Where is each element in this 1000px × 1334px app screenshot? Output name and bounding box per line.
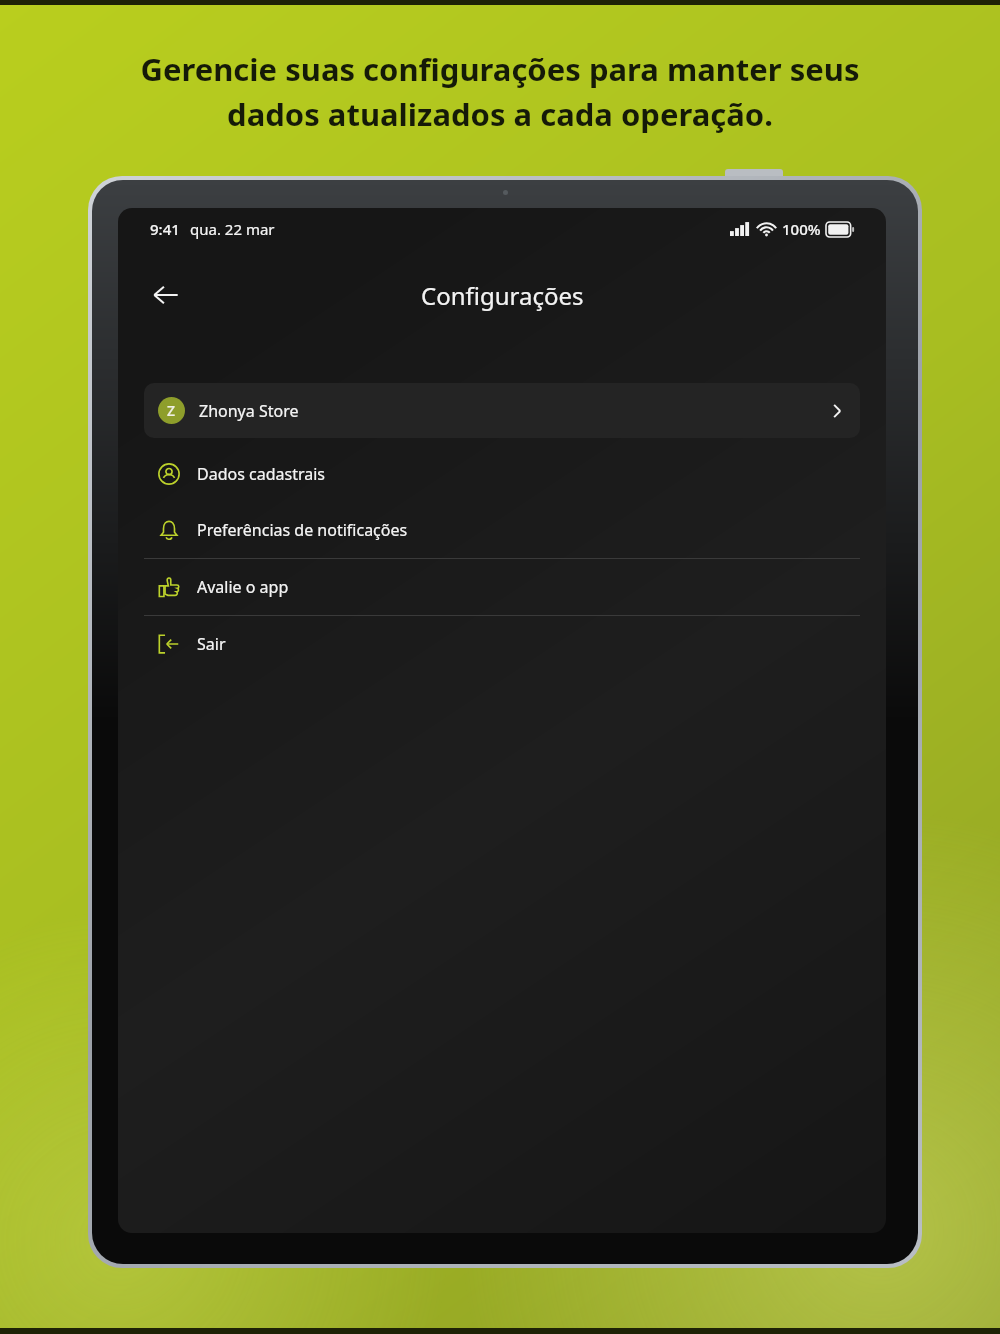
button[interactable]: Sair [144,616,860,672]
button[interactable]: Preferências de notificações [144,502,860,558]
button[interactable]: Avalie o app [144,559,860,615]
staticText: Z [167,401,176,420]
staticText: 100% [782,219,821,239]
staticText: Configurações [421,279,584,312]
button[interactable]: Z [144,383,860,438]
staticText: Avalie o app [197,576,289,598]
button[interactable]: Voltar [140,269,192,321]
staticText: Preferências de notificações [197,519,408,541]
staticText: Zhonya Store [199,400,299,422]
staticText: qua. 22 mar [190,219,275,239]
staticText: Sair [197,633,226,655]
staticText: 9:41 [150,219,180,239]
staticText: Dados cadastrais [197,463,325,485]
button[interactable]: Dados cadastrais [144,446,860,502]
staticText: Gerencie suas configurações para manter … [70,48,930,135]
